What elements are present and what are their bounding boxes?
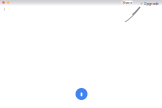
button[interactable]: Upgrade bbox=[140, 1, 158, 6]
button[interactable]: Send bbox=[75, 88, 87, 100]
staticText: Upgrade bbox=[143, 1, 158, 6]
staticText: Share bbox=[122, 0, 132, 5]
button[interactable]: Share bbox=[121, 1, 133, 4]
